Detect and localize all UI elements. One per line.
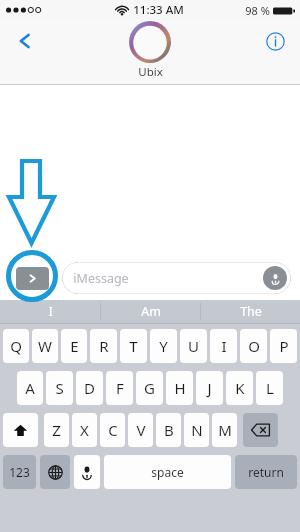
staticText: 11:33 AM (133, 2, 184, 18)
button[interactable]: V (128, 413, 153, 447)
staticText: S (55, 378, 64, 398)
button[interactable]: J (196, 371, 223, 405)
staticText: U (188, 336, 199, 356)
staticText: D (84, 378, 95, 398)
staticText: Z (52, 420, 61, 440)
staticText: W (38, 336, 52, 356)
staticText: L (266, 378, 274, 398)
staticText: O (248, 336, 260, 356)
button[interactable]: Q (3, 329, 29, 363)
staticText: I (48, 303, 53, 320)
button[interactable]: Shift (3, 413, 38, 447)
button[interactable]: H (166, 371, 193, 405)
staticText: G (144, 378, 155, 398)
staticText: T (129, 336, 138, 356)
button[interactable]: Dictate (263, 266, 287, 290)
button[interactable]: The (201, 300, 300, 323)
button[interactable]: Ubix (129, 21, 171, 80)
staticText: H (174, 378, 186, 398)
staticText: space (151, 464, 184, 480)
staticText: P (279, 336, 289, 356)
button[interactable]: L (256, 371, 283, 405)
staticText: F (116, 378, 124, 398)
button[interactable]: I (0, 300, 100, 323)
staticText: J (207, 378, 212, 398)
button[interactable]: T (120, 329, 147, 363)
staticText: I (221, 336, 227, 356)
staticText: C (108, 420, 118, 440)
button[interactable]: R (90, 329, 117, 363)
staticText: X (80, 420, 89, 440)
staticText: E (70, 336, 79, 356)
button[interactable]: return (235, 455, 297, 489)
button[interactable]: Switch keyboard (40, 455, 70, 489)
staticText: Ubix (138, 64, 163, 80)
button[interactable]: space (104, 455, 231, 489)
button[interactable]: S (46, 371, 73, 405)
button[interactable]: E (61, 329, 87, 363)
button[interactable]: K (226, 371, 253, 405)
staticText: N (191, 420, 203, 440)
staticText: K (235, 378, 245, 398)
button[interactable]: B (156, 413, 181, 447)
staticText: B (164, 420, 174, 440)
button[interactable]: Dictate (74, 455, 100, 489)
button[interactable]: Y (150, 329, 177, 363)
button[interactable]: F (106, 371, 133, 405)
button[interactable]: 123 (3, 455, 36, 489)
button[interactable]: C (100, 413, 125, 447)
button[interactable]: N (184, 413, 209, 447)
button[interactable]: iMessage (62, 262, 291, 294)
button[interactable]: U (180, 329, 207, 363)
button[interactable]: A (17, 371, 43, 405)
staticText: 98 % (245, 3, 270, 18)
button[interactable]: I (210, 329, 237, 363)
staticText: R (99, 336, 109, 356)
button[interactable]: D (76, 371, 103, 405)
staticText: Y (159, 336, 168, 356)
button[interactable]: G (136, 371, 163, 405)
button[interactable]: M (212, 413, 237, 447)
staticText: A (25, 378, 35, 398)
staticText: Am (141, 303, 161, 320)
staticText: The (240, 303, 262, 320)
button[interactable]: Backspace (243, 413, 278, 447)
staticText: Q (10, 336, 22, 356)
button[interactable]: Details (258, 24, 292, 58)
staticText: 123 (9, 464, 30, 480)
button[interactable]: Z (44, 413, 69, 447)
button[interactable]: W (32, 329, 58, 363)
staticText: iMessage (73, 270, 129, 287)
button[interactable]: Back (8, 24, 42, 58)
button[interactable]: P (270, 329, 297, 363)
staticText: return (248, 464, 284, 480)
staticText: V (136, 420, 146, 440)
button[interactable]: Am (101, 300, 200, 323)
button[interactable]: X (72, 413, 97, 447)
button[interactable]: O (240, 329, 267, 363)
staticText: M (218, 420, 232, 440)
button[interactable]: Send (16, 267, 49, 290)
